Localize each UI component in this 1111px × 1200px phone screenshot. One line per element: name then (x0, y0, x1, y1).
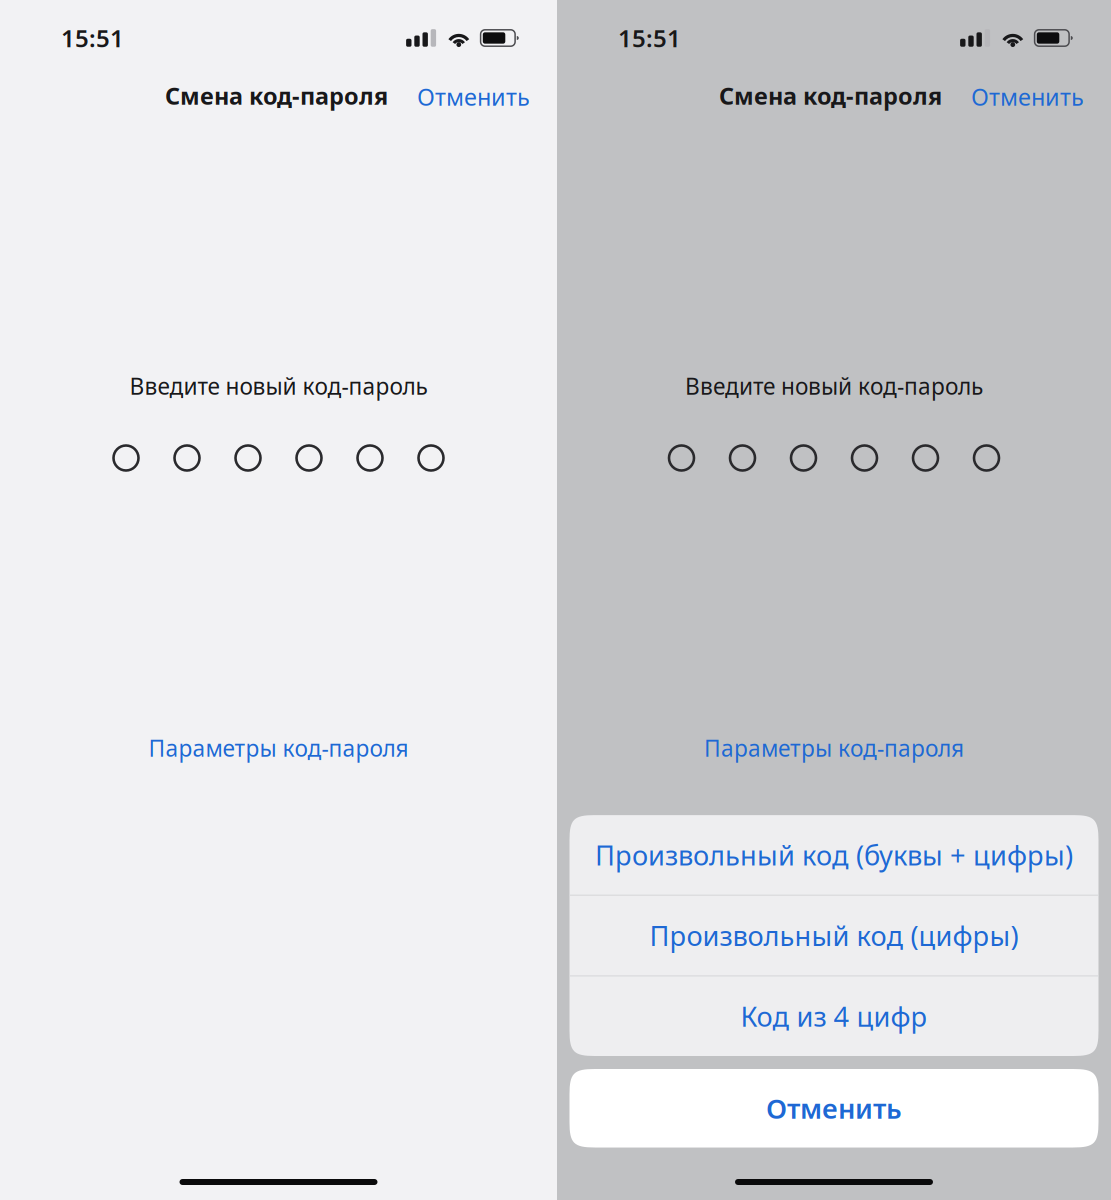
staticText: Параметры код-пароля (148, 733, 408, 763)
button[interactable]: Параметры код-пароля (680, 726, 988, 770)
button[interactable]: Произвольный код (буквы + цифры) (569, 815, 1098, 895)
staticText: Отменить (766, 1090, 902, 1126)
staticText: Введите новый код-пароль (129, 371, 427, 401)
staticText: Смена код-пароля (165, 80, 388, 111)
staticText: Произвольный код (цифры) (649, 917, 1018, 954)
button[interactable]: Отменить (569, 1069, 1098, 1147)
staticText: 15:51 (618, 22, 681, 54)
staticText: 15:51 (61, 22, 124, 54)
button[interactable]: Отменить (942, 70, 1111, 119)
staticText: Параметры код-пароля (704, 733, 964, 763)
button[interactable]: Код из 4 цифр (569, 976, 1098, 1056)
button[interactable]: Отменить (388, 70, 557, 119)
staticText: Смена код-пароля (719, 80, 942, 111)
staticText: Отменить (971, 81, 1084, 112)
staticText: Код из 4 цифр (740, 998, 927, 1034)
staticText: Отменить (417, 81, 530, 112)
button[interactable]: Произвольный код (цифры) (569, 896, 1098, 975)
button[interactable]: Параметры код-пароля (124, 726, 432, 770)
staticText: Введите новый код-пароль (685, 371, 983, 401)
staticText: Произвольный код (буквы + цифры) (595, 837, 1073, 873)
